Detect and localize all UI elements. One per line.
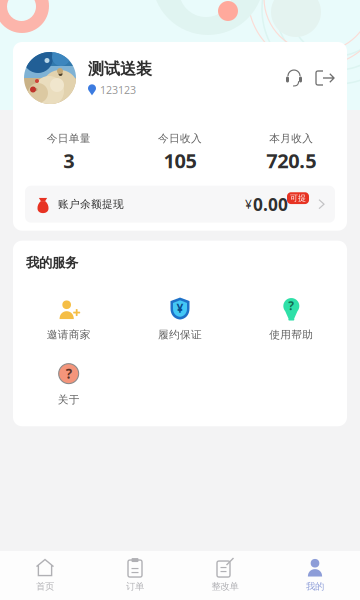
staticText: 本月收入	[269, 132, 313, 145]
staticText: 使用帮助	[269, 328, 313, 341]
staticText: ¥	[176, 300, 183, 316]
button[interactable]: 整改单	[180, 557, 270, 592]
button[interactable]: 邀请商家	[13, 298, 124, 341]
button[interactable]: ¥	[124, 298, 236, 341]
staticText: 可提	[290, 193, 306, 203]
staticText: 关于	[58, 393, 80, 406]
staticText: ?	[66, 365, 72, 382]
staticText: ¥	[245, 196, 252, 212]
staticText: 今日单量	[47, 132, 91, 145]
staticText: 首页	[36, 580, 54, 592]
staticText: 履约保证	[158, 328, 202, 341]
button[interactable]: 我的	[270, 557, 360, 592]
staticText: 我的服务	[26, 255, 78, 271]
staticText: 邀请商家	[47, 328, 91, 341]
button[interactable]: Sign out	[310, 64, 340, 92]
staticText: 105	[163, 147, 196, 174]
button[interactable]: ?	[13, 363, 124, 406]
staticText: 今日收入	[158, 132, 202, 145]
staticText: 0.00	[253, 193, 288, 216]
staticText: 整改单	[211, 580, 238, 592]
button[interactable]: 账户余额提现	[25, 186, 335, 223]
staticText: 账户余额提现	[58, 198, 124, 211]
button[interactable]: ?	[236, 298, 347, 341]
staticText: 720.5	[266, 147, 316, 174]
staticText: 3	[63, 147, 74, 174]
staticText: 订单	[126, 580, 144, 592]
staticText: ?	[288, 298, 294, 313]
staticText: 123123	[100, 83, 136, 97]
button[interactable]: 首页	[0, 557, 90, 592]
button[interactable]: Customer service	[278, 62, 310, 94]
staticText: 我的	[306, 580, 324, 592]
button[interactable]: 订单	[90, 557, 180, 592]
staticText: 测试送装	[88, 59, 152, 79]
